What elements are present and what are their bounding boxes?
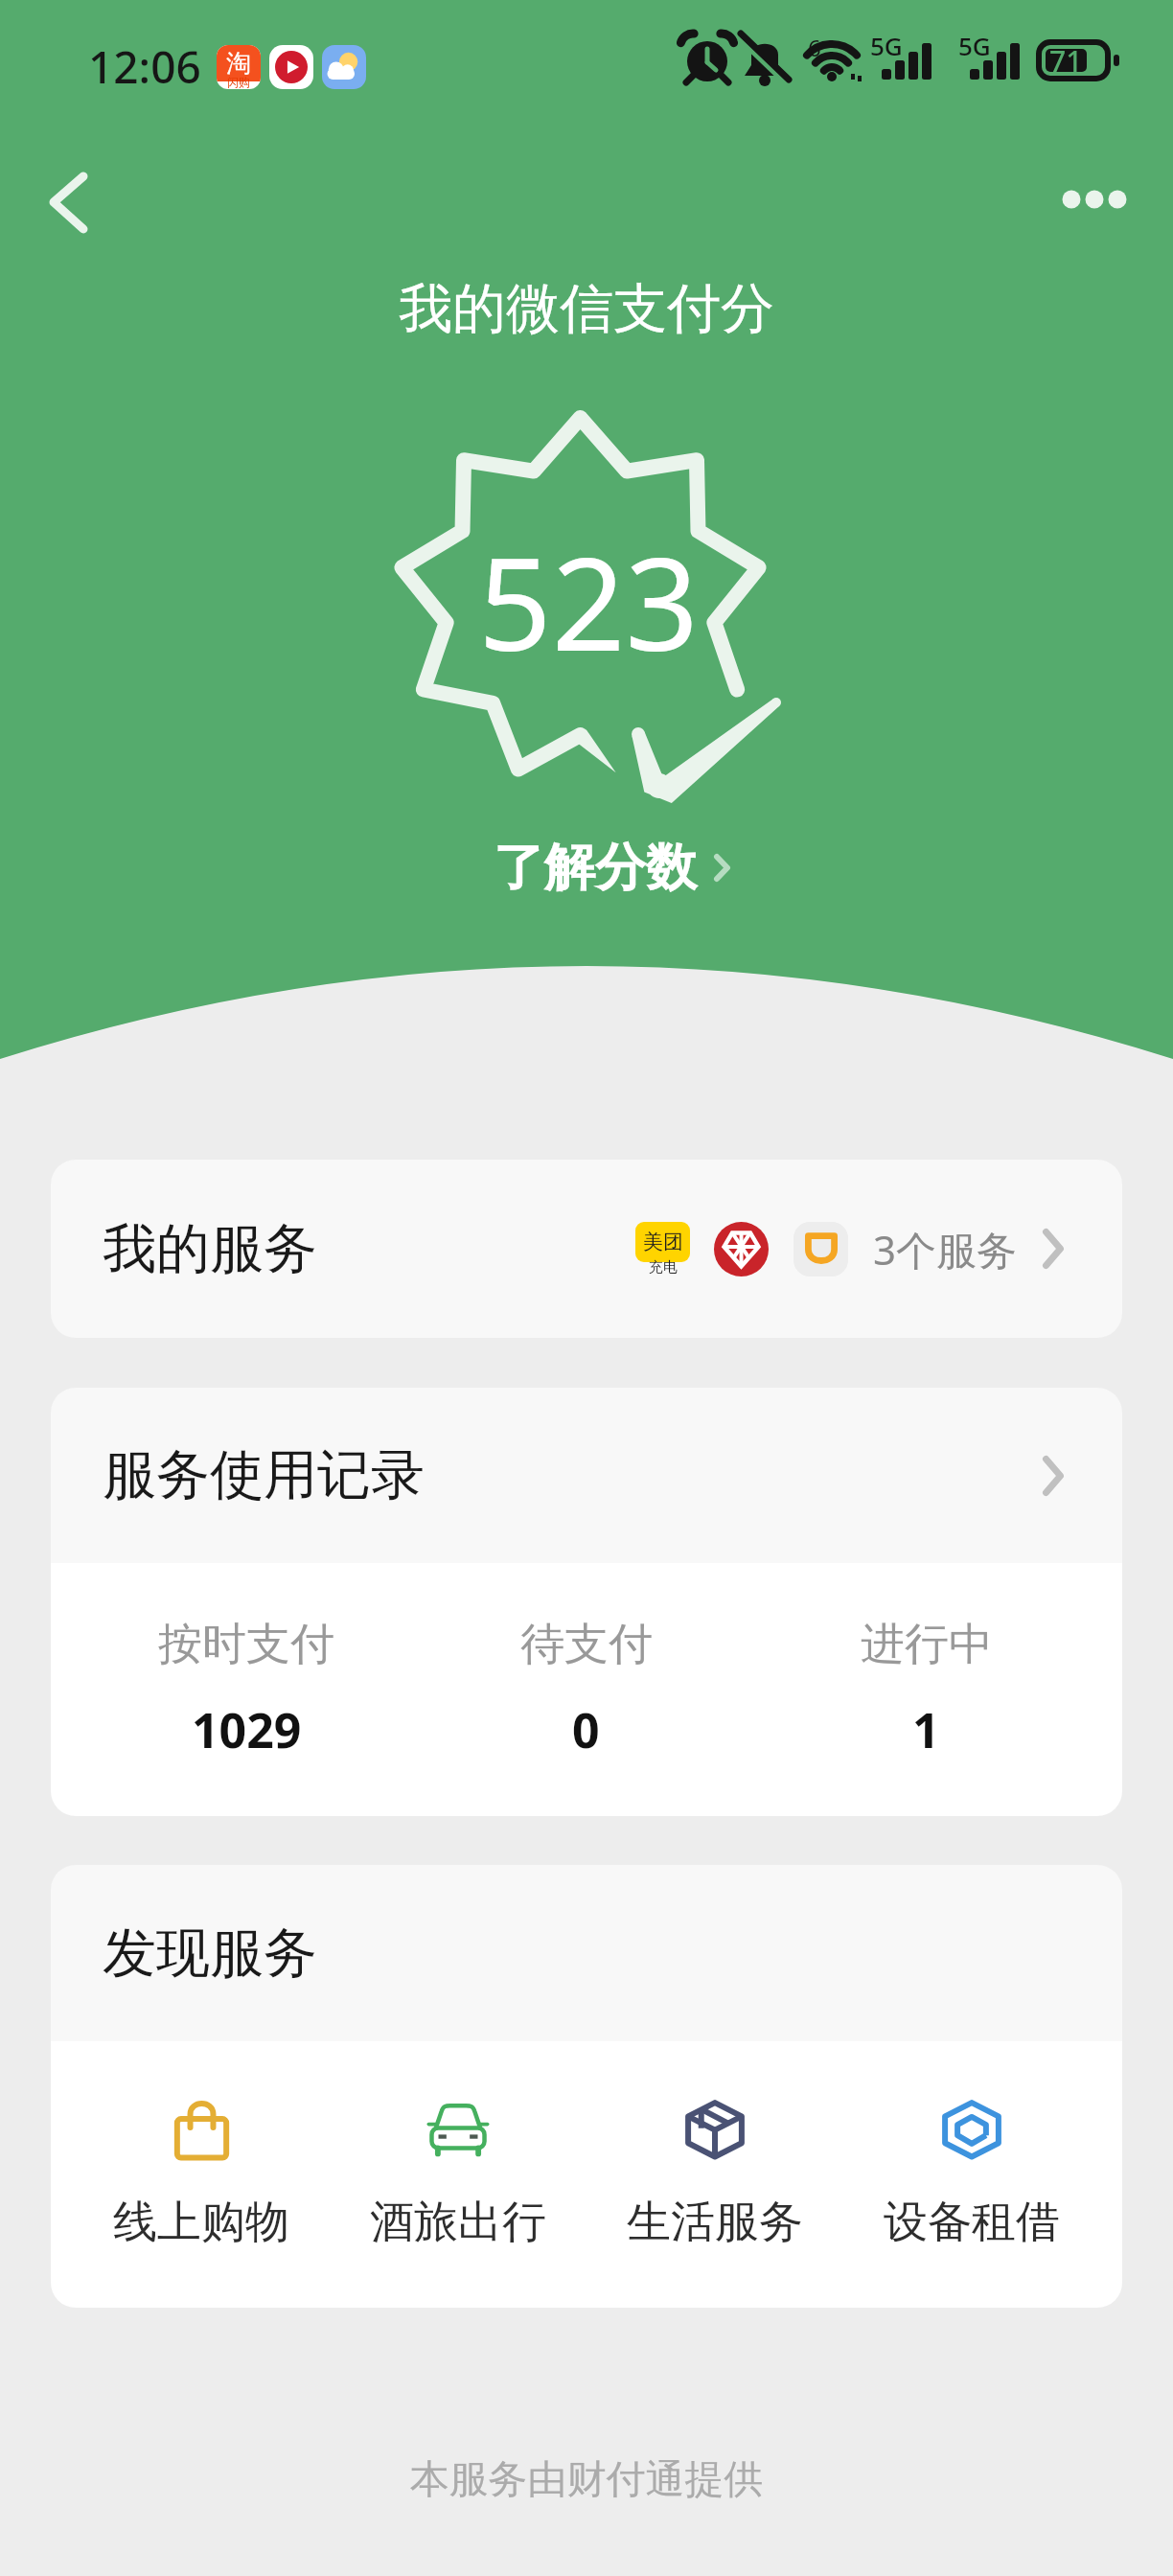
- button[interactable]: More options: [1045, 153, 1150, 245]
- staticText: 0: [572, 1697, 600, 1762]
- button[interactable]: 我的服务: [51, 1160, 1122, 1338]
- staticText: 淘: [226, 48, 251, 80]
- staticText: 本服务由财付通提供: [0, 2455, 1173, 2505]
- button[interactable]: 待支付: [416, 1563, 756, 1816]
- staticText: 闪购: [227, 75, 250, 89]
- button[interactable]: 设备租借: [843, 2041, 1100, 2308]
- staticText: 12:06: [88, 36, 201, 97]
- staticText: 服务使用记录: [103, 1441, 425, 1509]
- button[interactable]: 酒旅出行: [330, 2041, 586, 2308]
- button[interactable]: 进行中: [756, 1563, 1096, 1816]
- staticText: 待支付: [520, 1617, 653, 1672]
- staticText: 1: [912, 1697, 940, 1762]
- button[interactable]: 服务使用记录: [51, 1388, 1122, 1563]
- button[interactable]: Back: [21, 146, 132, 257]
- staticText: 按时支付: [158, 1617, 334, 1672]
- staticText: 酒旅出行: [370, 2195, 546, 2250]
- staticText: 了解分数: [494, 836, 697, 900]
- button[interactable]: 按时支付: [77, 1563, 416, 1816]
- staticText: 3个服务: [873, 1222, 1018, 1276]
- staticText: 发现服务: [103, 1920, 317, 1988]
- staticText: 生活服务: [627, 2195, 803, 2250]
- staticText: 进行中: [861, 1617, 993, 1672]
- staticText: 1029: [192, 1697, 302, 1762]
- button[interactable]: 生活服务: [586, 2041, 843, 2308]
- button[interactable]: 线上购物: [73, 2041, 330, 2308]
- staticText: 美团: [643, 1230, 683, 1254]
- staticText: 5G: [870, 29, 903, 62]
- staticText: 线上购物: [113, 2195, 289, 2250]
- button[interactable]: 了解分数: [484, 830, 740, 906]
- staticText: 设备租借: [884, 2195, 1060, 2250]
- staticText: 5G: [958, 29, 991, 62]
- staticText: 6: [808, 32, 821, 63]
- staticText: 523: [478, 514, 699, 689]
- staticText: 我的微信支付分: [0, 275, 1173, 343]
- staticText: 我的服务: [103, 1215, 317, 1283]
- staticText: 71: [1049, 41, 1083, 80]
- staticText: 充电: [649, 1258, 678, 1276]
